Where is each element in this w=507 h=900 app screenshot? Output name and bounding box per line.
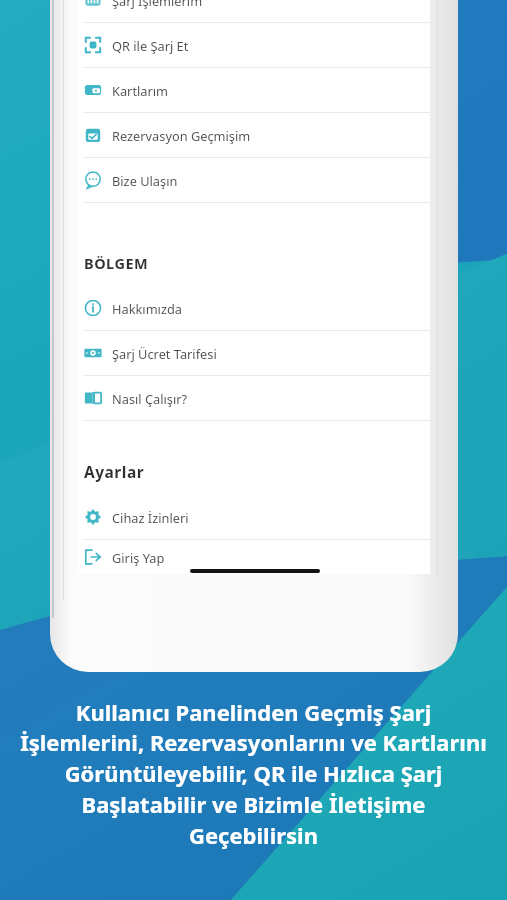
- button[interactable]: Bize Ulaşın: [77, 158, 430, 202]
- other: Rezervasyon Geçmişim: [84, 126, 102, 144]
- button[interactable]: Cihaz İzinleri: [77, 495, 430, 539]
- other: Şarj İşlemlerim: [84, 0, 102, 9]
- staticText: Rezervasyon Geçmişim: [112, 127, 251, 144]
- staticText: BÖLGEM: [84, 253, 149, 273]
- staticText: Kullanıcı Panelinden Geçmiş Şarj İşlemle…: [20, 697, 487, 851]
- other: QR ile Şarj Et: [84, 36, 102, 54]
- staticText: Bize Ulaşın: [112, 172, 178, 189]
- staticText: Ayarlar: [84, 461, 145, 482]
- staticText: Şarj İşlemlerim: [112, 0, 203, 9]
- other: Bize Ulaşın: [84, 171, 102, 189]
- other: Nasıl Çalışır?: [84, 389, 102, 407]
- other: Şarj Ücret Tarifesi: [84, 344, 102, 362]
- button[interactable]: Hakkımızda: [77, 286, 430, 330]
- button[interactable]: QR ile Şarj Et: [77, 23, 430, 67]
- staticText: Cihaz İzinleri: [112, 509, 189, 526]
- other: Giriş Yap: [84, 548, 102, 566]
- button[interactable]: Nasıl Çalışır?: [77, 376, 430, 420]
- button[interactable]: Rezervasyon Geçmişim: [77, 113, 430, 157]
- button[interactable]: Kartlarım: [77, 68, 430, 112]
- staticText: QR ile Şarj Et: [112, 37, 189, 54]
- staticText: Şarj Ücret Tarifesi: [112, 345, 217, 362]
- other: Cihaz İzinleri: [84, 508, 102, 526]
- staticText: Kartlarım: [112, 82, 169, 99]
- button[interactable]: Giriş Yap: [77, 540, 430, 574]
- button[interactable]: Şarj İşlemlerim: [77, 0, 430, 22]
- other: Kartlarım: [84, 81, 102, 99]
- staticText: Nasıl Çalışır?: [112, 390, 188, 407]
- other: Hakkımızda: [84, 299, 102, 317]
- staticText: Hakkımızda: [112, 300, 182, 317]
- button[interactable]: Şarj Ücret Tarifesi: [77, 331, 430, 375]
- staticText: Giriş Yap: [112, 549, 165, 566]
